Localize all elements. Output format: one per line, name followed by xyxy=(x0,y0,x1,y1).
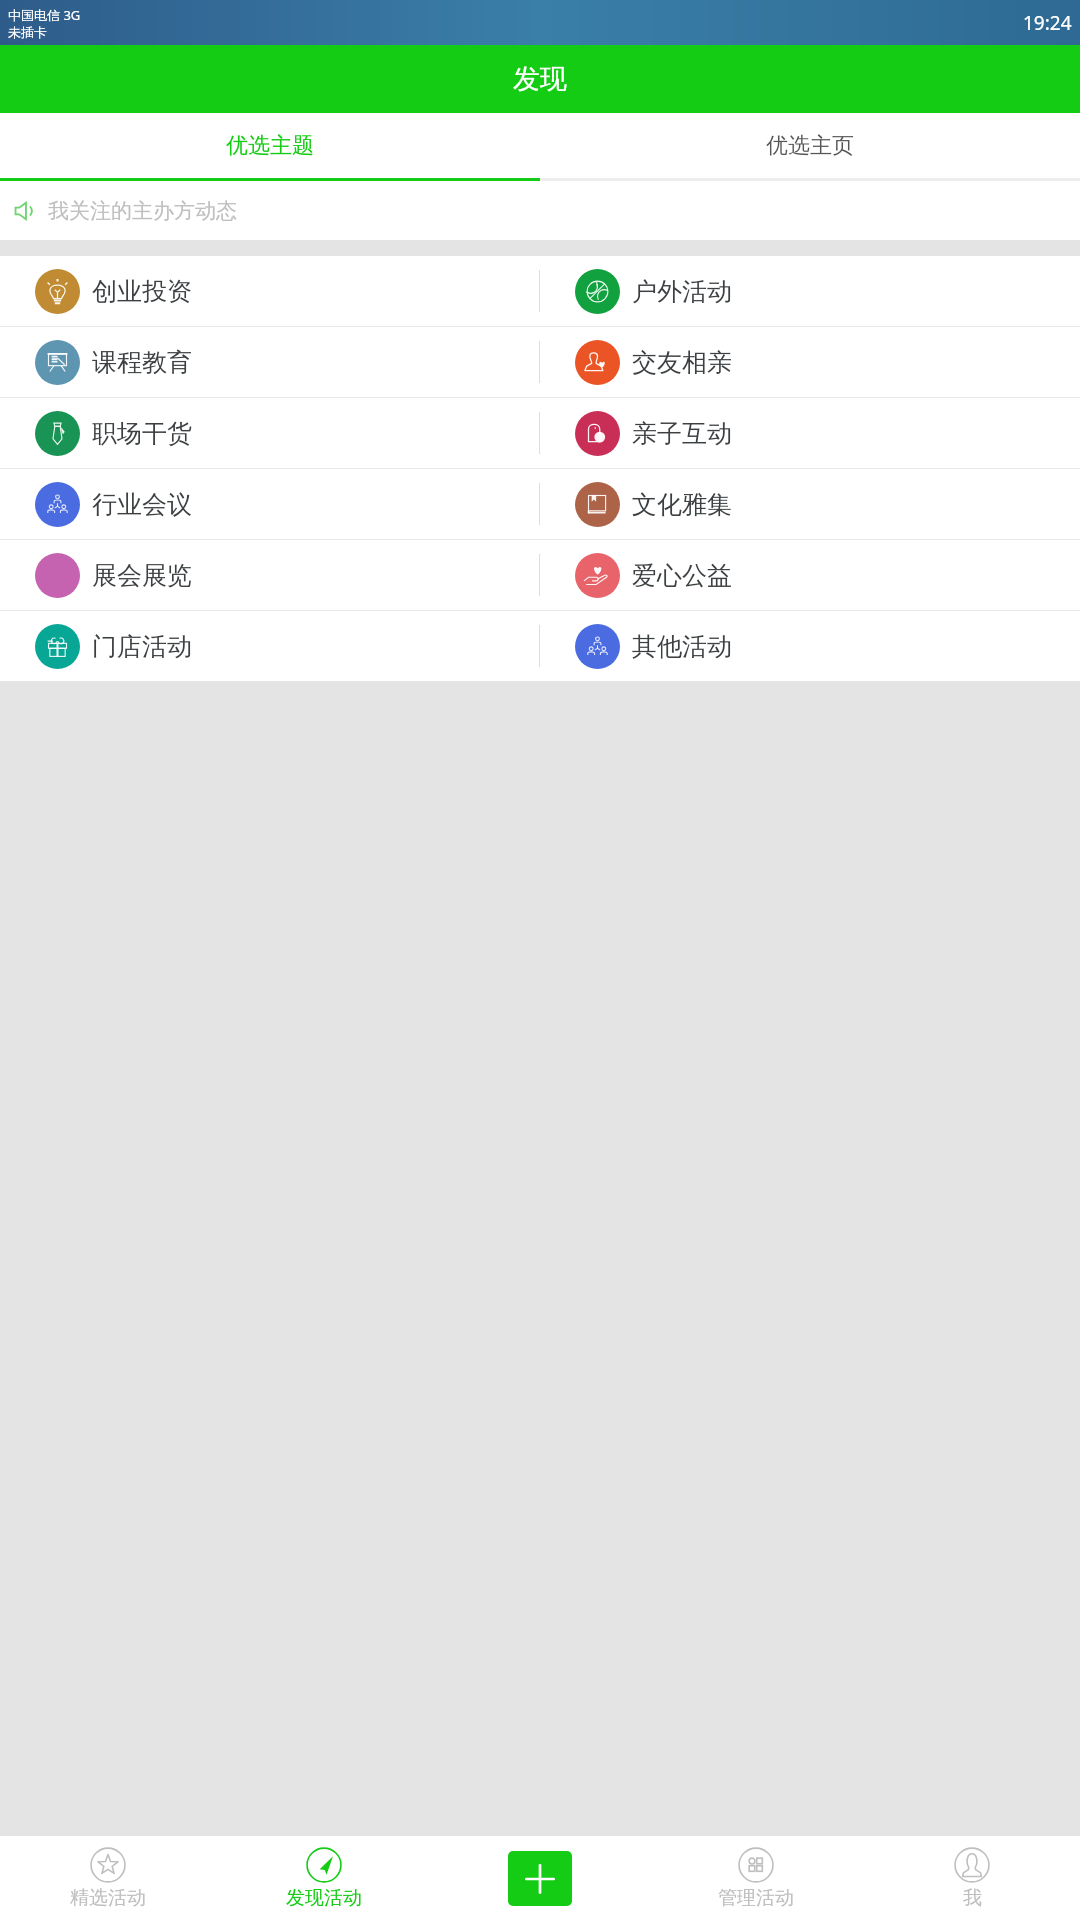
button[interactable]: 创业投资 xyxy=(0,256,539,326)
button[interactable]: 亲子互动 xyxy=(540,398,1080,468)
button[interactable]: 我关注的主办方动态 xyxy=(0,181,1080,240)
button[interactable]: 精选活动 xyxy=(0,1836,216,1920)
button[interactable]: 文化雅集 xyxy=(540,469,1080,539)
staticText: 创业投资 xyxy=(92,276,192,307)
staticText: 管理活动 xyxy=(718,1886,794,1910)
button[interactable]: 爱心公益 xyxy=(540,540,1080,610)
button[interactable]: 其他活动 xyxy=(540,611,1080,681)
button[interactable]: 行业会议 xyxy=(0,469,539,539)
staticText: 其他活动 xyxy=(632,631,732,662)
button[interactable]: 交友相亲 xyxy=(540,327,1080,397)
staticText: 交友相亲 xyxy=(632,347,732,378)
staticText: 发现活动 xyxy=(286,1886,362,1910)
button[interactable]: 优选主页 xyxy=(540,113,1080,178)
button[interactable]: 管理活动 xyxy=(648,1836,864,1920)
staticText: 精选活动 xyxy=(70,1886,146,1910)
button[interactable]: 门店活动 xyxy=(0,611,539,681)
button[interactable]: Create xyxy=(508,1851,572,1906)
staticText: 优选主题 xyxy=(226,132,314,160)
staticText: 我关注的主办方动态 xyxy=(48,198,237,224)
button[interactable]: 展会展览 xyxy=(0,540,539,610)
staticText: 爱心公益 xyxy=(632,560,732,591)
staticText: 中国电信 3G xyxy=(8,6,81,24)
button[interactable]: 优选主题 xyxy=(0,113,540,178)
staticText: 发现 xyxy=(513,62,567,96)
staticText: 未插卡 xyxy=(8,24,47,40)
staticText: 亲子互动 xyxy=(632,418,732,449)
button[interactable]: 发现活动 xyxy=(216,1836,432,1920)
staticText: 行业会议 xyxy=(92,489,192,520)
staticText: 文化雅集 xyxy=(632,489,732,520)
staticText: 我 xyxy=(963,1886,982,1910)
button[interactable]: 户外活动 xyxy=(540,256,1080,326)
button[interactable]: 我 xyxy=(864,1836,1080,1920)
staticText: 门店活动 xyxy=(92,631,192,662)
button[interactable]: 课程教育 xyxy=(0,327,539,397)
staticText: 展会展览 xyxy=(92,560,192,591)
staticText: 19:24 xyxy=(1023,10,1072,36)
staticText: 课程教育 xyxy=(92,347,192,378)
staticText: 职场干货 xyxy=(92,418,192,449)
staticText: 户外活动 xyxy=(632,276,732,307)
staticText: 优选主页 xyxy=(766,132,854,160)
button[interactable]: 职场干货 xyxy=(0,398,539,468)
